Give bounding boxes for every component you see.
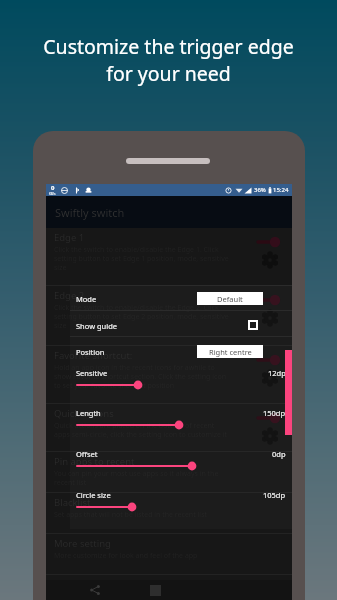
staticText: Pin apps to recent <box>54 455 135 468</box>
button[interactable]: Toggle Favorite shortcut: <box>256 353 282 367</box>
button[interactable]: Settings <box>262 310 278 326</box>
staticText: Right centre <box>209 347 252 357</box>
staticText: Offset <box>76 449 98 459</box>
staticText: Position <box>76 347 105 357</box>
staticText: 105dp <box>263 490 286 500</box>
button[interactable]: Swiftly switch <box>46 196 292 228</box>
staticText: for your need <box>106 60 231 87</box>
staticText: Customize the trigger edge <box>43 33 294 60</box>
button[interactable]: Favorite shortcut: <box>46 346 292 404</box>
button[interactable]: Show guide <box>70 319 292 332</box>
button[interactable]: Blacklist <box>46 493 292 534</box>
button[interactable]: Pin apps to recent <box>46 452 292 493</box>
staticText: Sensitive <box>76 368 108 378</box>
button[interactable]: Toggle Quick actions <box>256 411 282 425</box>
button[interactable]: Share <box>88 583 102 597</box>
staticText: You can pin your most use apps so it alw… <box>54 469 232 487</box>
staticText: Circle size <box>76 490 111 500</box>
staticText: More setting <box>54 537 111 550</box>
staticText: Blacklist <box>54 496 91 509</box>
staticText: Default <box>217 294 243 304</box>
staticText: Show guide <box>76 321 118 331</box>
staticText: Edge 1 <box>54 231 85 244</box>
staticText: Quick actions <box>54 407 114 420</box>
button[interactable]: Edge 2 <box>46 286 292 346</box>
button[interactable]: Sensitive slider <box>70 378 292 392</box>
staticText: Swiftly switch <box>55 205 125 220</box>
staticText: 0dp <box>272 449 286 459</box>
button[interactable]: Edge 1 <box>46 228 292 286</box>
staticText: Favorite shortcut: <box>54 349 133 362</box>
button[interactable]: Settings <box>262 252 278 268</box>
staticText: Hold an app icon in the recent icons for… <box>54 363 232 390</box>
staticText: 15:24 <box>273 186 289 194</box>
staticText: Length <box>76 408 101 418</box>
staticText: Quick actions are placed on the bottom o… <box>54 421 232 439</box>
staticText: KB/s <box>49 192 56 196</box>
button[interactable]: Position <box>70 345 292 358</box>
staticText: 0 <box>51 184 55 192</box>
button[interactable]: Right centre <box>197 345 263 358</box>
button[interactable]: Offset slider <box>70 459 292 473</box>
button[interactable]: Settings <box>262 370 278 386</box>
staticText: 150dp <box>263 408 286 418</box>
button[interactable]: Default <box>197 292 263 305</box>
button[interactable]: Circle size slider <box>70 500 292 514</box>
staticText: Edge 2 <box>54 289 85 302</box>
staticText: 36% <box>254 186 266 194</box>
button[interactable]: Mode <box>70 292 292 305</box>
staticText: Set apps that will not be listed in the … <box>54 510 208 520</box>
staticText: 12dp <box>268 368 286 378</box>
button[interactable]: Settings <box>262 428 278 444</box>
button[interactable]: Show guide checkbox <box>248 320 258 330</box>
staticText: Click the switch to enable/disable the E… <box>54 303 232 330</box>
button[interactable]: Length slider <box>70 418 292 432</box>
button[interactable]: Toggle Edge 1 <box>256 235 282 249</box>
button[interactable]: Toggle Edge 2 <box>256 293 282 307</box>
staticText: Mode <box>76 294 97 304</box>
button[interactable]: Quick actions <box>46 404 292 452</box>
